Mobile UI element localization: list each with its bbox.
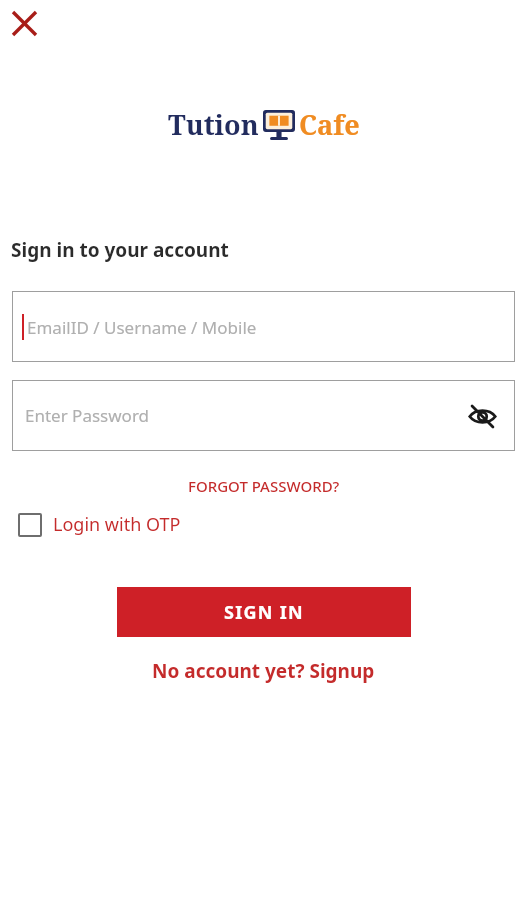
staticText: EmailID / Username / Mobile: [27, 316, 257, 339]
staticText: FORGOT PASSWORD?: [188, 476, 340, 496]
button[interactable]: SIGN IN: [117, 587, 411, 637]
button[interactable]: No account yet? Signup: [146, 655, 381, 687]
staticText: Tution: [168, 106, 259, 143]
staticText: Enter Password: [25, 404, 150, 427]
staticText: Sign in to your account: [11, 237, 229, 263]
button[interactable]: FORGOT PASSWORD?: [182, 473, 346, 499]
staticText: Cafe: [299, 106, 360, 143]
button[interactable]: EmailID / Username / Mobile: [12, 291, 515, 362]
button[interactable]: Show password: [461, 395, 503, 437]
button[interactable]: Login with OTP: [18, 512, 181, 537]
button[interactable]: Enter Password: [12, 380, 515, 451]
staticText: Login with OTP: [53, 512, 181, 537]
staticText: SIGN IN: [224, 600, 305, 625]
button[interactable]: Close: [1, 0, 47, 46]
staticText: No account yet? Signup: [152, 658, 375, 684]
